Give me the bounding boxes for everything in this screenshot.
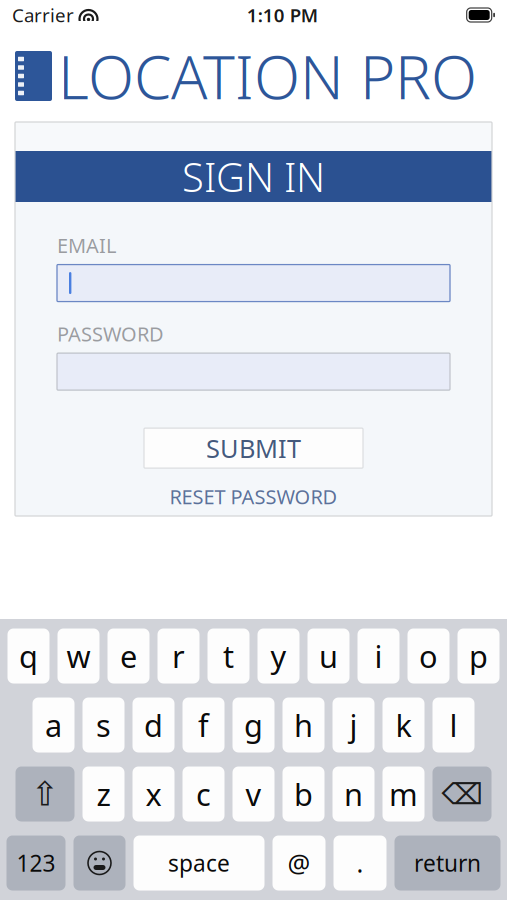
button[interactable]: Delete [432, 766, 491, 821]
staticText: b [294, 774, 313, 814]
button[interactable]: t [207, 628, 249, 683]
staticText: v [245, 774, 261, 814]
staticText: i [374, 636, 382, 676]
button[interactable]: q [7, 628, 49, 683]
staticText: k [395, 705, 411, 745]
staticText: @ [287, 846, 310, 880]
button[interactable]: @ [272, 835, 325, 890]
staticText: EMAIL [57, 232, 116, 259]
button[interactable]: SUBMIT [144, 428, 363, 468]
staticText: q [19, 636, 38, 676]
button[interactable]: Emoji keyboard [73, 835, 125, 890]
staticText: w [66, 636, 90, 676]
button[interactable]: . [333, 835, 386, 890]
staticText: 123 [16, 848, 55, 878]
staticText: c [196, 774, 211, 814]
button[interactable]: n [332, 766, 374, 821]
button[interactable]: e [107, 628, 149, 683]
staticText: SIGN IN [182, 150, 325, 203]
staticText: RESET PASSWORD [169, 483, 337, 510]
button[interactable]: z [82, 766, 124, 821]
staticText: j [349, 705, 357, 745]
staticText: space [168, 848, 230, 878]
button[interactable]: x [132, 766, 174, 821]
button[interactable]: w [57, 628, 99, 683]
button[interactable]: i [357, 628, 399, 683]
staticText: d [144, 705, 163, 745]
button[interactable]: p [457, 628, 499, 683]
staticText: ⌫ [441, 777, 482, 811]
button[interactable]: RESET PASSWORD [159, 479, 347, 514]
button[interactable]: f [182, 697, 224, 752]
staticText: 1:10 PM [247, 3, 318, 27]
staticText: f [198, 705, 209, 745]
staticText: l [449, 705, 457, 745]
staticText: LOCATION PRO [58, 36, 477, 116]
button[interactable]: a [32, 697, 74, 752]
staticText: p [469, 636, 488, 676]
staticText: ⇧ [31, 775, 59, 813]
button[interactable]: r [157, 628, 199, 683]
button[interactable]: v [232, 766, 274, 821]
button[interactable]: d [132, 697, 174, 752]
staticText: m [389, 774, 418, 814]
staticText: n [344, 774, 363, 814]
button[interactable]: s [82, 697, 124, 752]
staticText: a [45, 705, 62, 745]
button[interactable]: k [382, 697, 424, 752]
staticText: x [145, 774, 161, 814]
button[interactable]: c [182, 766, 224, 821]
staticText: e [120, 636, 137, 676]
button[interactable]: g [232, 697, 274, 752]
staticText: r [172, 636, 185, 676]
staticText: t [223, 636, 234, 676]
staticText: SUBMIT [206, 431, 301, 465]
button[interactable]: m [382, 766, 424, 821]
button[interactable]: h [282, 697, 324, 752]
button[interactable]: space [133, 835, 264, 890]
staticText: u [319, 636, 338, 676]
staticText: Carrier [12, 3, 74, 27]
button[interactable]: o [407, 628, 449, 683]
staticText: o [419, 636, 438, 676]
staticText: s [96, 705, 111, 745]
button[interactable]: y [257, 628, 299, 683]
button[interactable]: u [307, 628, 349, 683]
staticText: PASSWORD [57, 321, 164, 347]
staticText: g [244, 705, 263, 745]
staticText: return [414, 848, 481, 878]
staticText: y [270, 636, 286, 676]
button[interactable]: j [332, 697, 374, 752]
staticText: . [356, 846, 363, 880]
button[interactable]: 123 [6, 835, 65, 890]
staticText: h [294, 705, 313, 745]
button[interactable]: l [432, 697, 474, 752]
button[interactable]: return [394, 835, 500, 890]
button[interactable]: b [282, 766, 324, 821]
button[interactable]: Shift [15, 766, 74, 821]
staticText: z [96, 774, 110, 814]
